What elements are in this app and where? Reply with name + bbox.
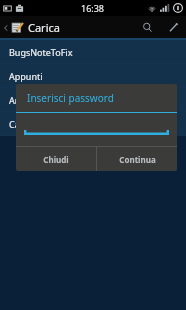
- button[interactable]: Appunti: [0, 64, 186, 87]
- staticText: Appunti: [9, 70, 43, 82]
- staticText: Chiudi: [43, 154, 69, 165]
- staticText: Inserisci password: [27, 91, 114, 105]
- staticText: Archivio: [9, 94, 43, 106]
- button[interactable]: Archivio: [0, 88, 186, 111]
- staticText: 16:38: [81, 2, 105, 14]
- button[interactable]: BugsNoteToFix: [0, 40, 186, 63]
- button[interactable]: Continua: [97, 147, 177, 171]
- button[interactable]: Edit: [160, 16, 186, 38]
- staticText: Carica: [28, 20, 60, 35]
- button[interactable]: Carica: [0, 20, 66, 35]
- button[interactable]: Chiudi: [16, 147, 96, 171]
- staticText: BugsNoteToFix: [9, 46, 73, 58]
- button[interactable]: Casa: [0, 112, 186, 135]
- staticText: Continua: [119, 154, 156, 165]
- button[interactable]: Search: [134, 16, 160, 38]
- staticText: Casa: [9, 118, 30, 130]
